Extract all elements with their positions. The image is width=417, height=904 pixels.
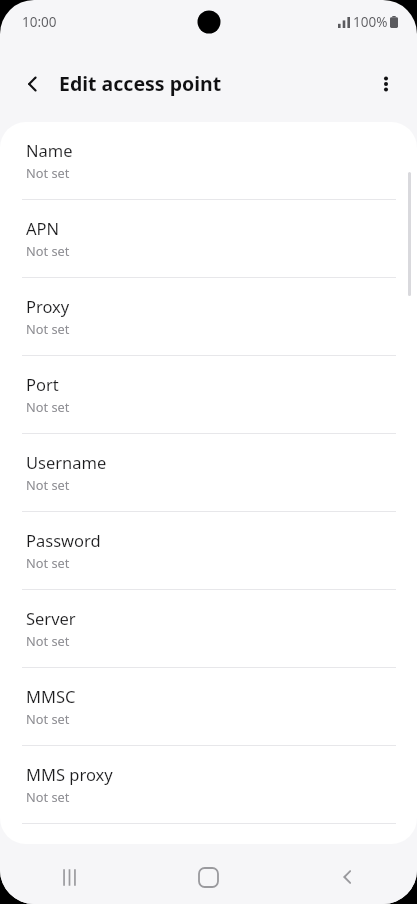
staticText: Username xyxy=(26,451,107,473)
staticText: Server xyxy=(26,607,76,629)
staticText: 10:00 xyxy=(22,13,57,31)
staticText: Proxy xyxy=(26,295,70,317)
staticText: Not set xyxy=(26,164,70,181)
staticText: Name xyxy=(26,139,73,161)
staticText: APN xyxy=(26,217,60,239)
button[interactable]: Back xyxy=(13,64,53,104)
button[interactable]: Recent apps xyxy=(0,848,139,904)
staticText: Not set xyxy=(26,242,70,259)
button[interactable]: Name xyxy=(0,122,417,199)
button[interactable]: Server xyxy=(0,590,417,667)
staticText: Port xyxy=(26,373,59,395)
staticText: Not set xyxy=(26,320,70,337)
button[interactable]: Port xyxy=(0,356,417,433)
button[interactable]: Proxy xyxy=(0,278,417,355)
staticText: 100% xyxy=(353,13,388,31)
button[interactable]: Back xyxy=(278,848,417,904)
staticText: Not set xyxy=(26,710,70,727)
staticText: Not set xyxy=(26,398,70,415)
staticText: Not set xyxy=(26,476,70,493)
staticText: MMS proxy xyxy=(26,763,113,785)
staticText: Edit access point xyxy=(59,70,222,97)
button[interactable]: More options xyxy=(366,64,406,104)
button[interactable]: Password xyxy=(0,512,417,589)
staticText: Not set xyxy=(26,554,70,571)
button[interactable]: MMS proxy xyxy=(0,746,417,823)
staticText: MMSC xyxy=(26,685,76,707)
button[interactable]: Home xyxy=(139,848,278,904)
button[interactable]: APN xyxy=(0,200,417,277)
button[interactable]: Username xyxy=(0,434,417,511)
staticText: Not set xyxy=(26,632,70,649)
staticText: Password xyxy=(26,529,101,551)
button[interactable]: MMSC xyxy=(0,668,417,745)
staticText: Not set xyxy=(26,788,70,805)
